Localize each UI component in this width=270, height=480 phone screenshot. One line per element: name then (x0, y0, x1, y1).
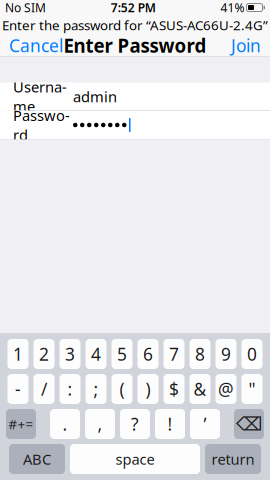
button[interactable]: 9 (215, 339, 236, 369)
staticText: 6 (143, 342, 153, 365)
button[interactable]: " (241, 374, 262, 404)
button[interactable]: $ (163, 374, 184, 404)
staticText: Cancel (9, 34, 63, 57)
button[interactable]: ; (85, 374, 106, 404)
staticText: ⌫ (236, 413, 262, 435)
button[interactable]: ) (137, 374, 158, 404)
staticText: / (41, 377, 47, 400)
button[interactable]: , (85, 409, 115, 439)
button[interactable]: ! (155, 409, 185, 439)
button[interactable]: 6 (137, 339, 158, 369)
staticText: 2 (39, 342, 49, 365)
button[interactable]: / (33, 374, 54, 404)
button[interactable]: - (7, 374, 28, 404)
button[interactable]: & (189, 374, 210, 404)
staticText: ! (167, 412, 172, 435)
staticText: 41% (220, 0, 244, 15)
button[interactable]: Delete (234, 409, 264, 439)
button[interactable]: 3 (59, 339, 80, 369)
staticText: ’ (203, 412, 206, 435)
button[interactable]: space (70, 444, 200, 474)
button[interactable]: 1 (7, 339, 28, 369)
button[interactable]: : (59, 374, 80, 404)
button[interactable]: 5 (111, 339, 132, 369)
staticText: @ (218, 377, 234, 400)
staticText: 8 (195, 342, 205, 365)
button[interactable]: return (205, 444, 261, 474)
button[interactable]: ? (120, 409, 150, 439)
button[interactable]: Join (222, 35, 270, 56)
staticText: ( (119, 377, 124, 400)
button[interactable]: 4 (85, 339, 106, 369)
button[interactable]: 7 (163, 339, 184, 369)
button[interactable]: . (50, 409, 80, 439)
staticText: ? (131, 412, 139, 435)
staticText: 7:52 PM (111, 0, 156, 15)
staticText: ABC (23, 449, 51, 469)
staticText: Enter the password for “ASUS-AC66U-2.4G” (2, 16, 268, 34)
staticText: . (62, 412, 67, 435)
button[interactable]: 2 (33, 339, 54, 369)
staticText: Username (13, 77, 67, 116)
staticText: 0 (247, 342, 257, 365)
staticText: , (97, 412, 102, 435)
button[interactable]: Cancel (0, 35, 72, 56)
staticText: return (211, 449, 254, 469)
staticText: #+= (8, 415, 33, 433)
staticText: ) (145, 377, 150, 400)
staticText: Enter Password (63, 33, 206, 58)
staticText: 3 (65, 342, 75, 365)
button[interactable]: #+= (6, 409, 36, 439)
staticText: 7 (169, 342, 179, 365)
staticText: 1 (13, 342, 23, 365)
staticText: $ (169, 377, 179, 400)
staticText: space (115, 449, 154, 469)
staticText: 5 (117, 342, 127, 365)
staticText: 4 (91, 342, 101, 365)
staticText: Password (13, 105, 70, 144)
staticText: " (248, 377, 255, 400)
button[interactable]: ( (111, 374, 132, 404)
staticText: - (15, 377, 21, 400)
button[interactable]: ABC (9, 444, 65, 474)
staticText: admin (73, 87, 117, 106)
button[interactable]: 8 (189, 339, 210, 369)
staticText: Join (231, 34, 261, 57)
staticText: 9 (221, 342, 231, 365)
staticText: ; (93, 377, 98, 400)
staticText: : (67, 377, 72, 400)
staticText: No SIM (5, 0, 46, 15)
button[interactable]: ’ (190, 409, 220, 439)
button[interactable]: 0 (241, 339, 262, 369)
button[interactable]: @ (215, 374, 236, 404)
staticText: & (193, 377, 206, 400)
